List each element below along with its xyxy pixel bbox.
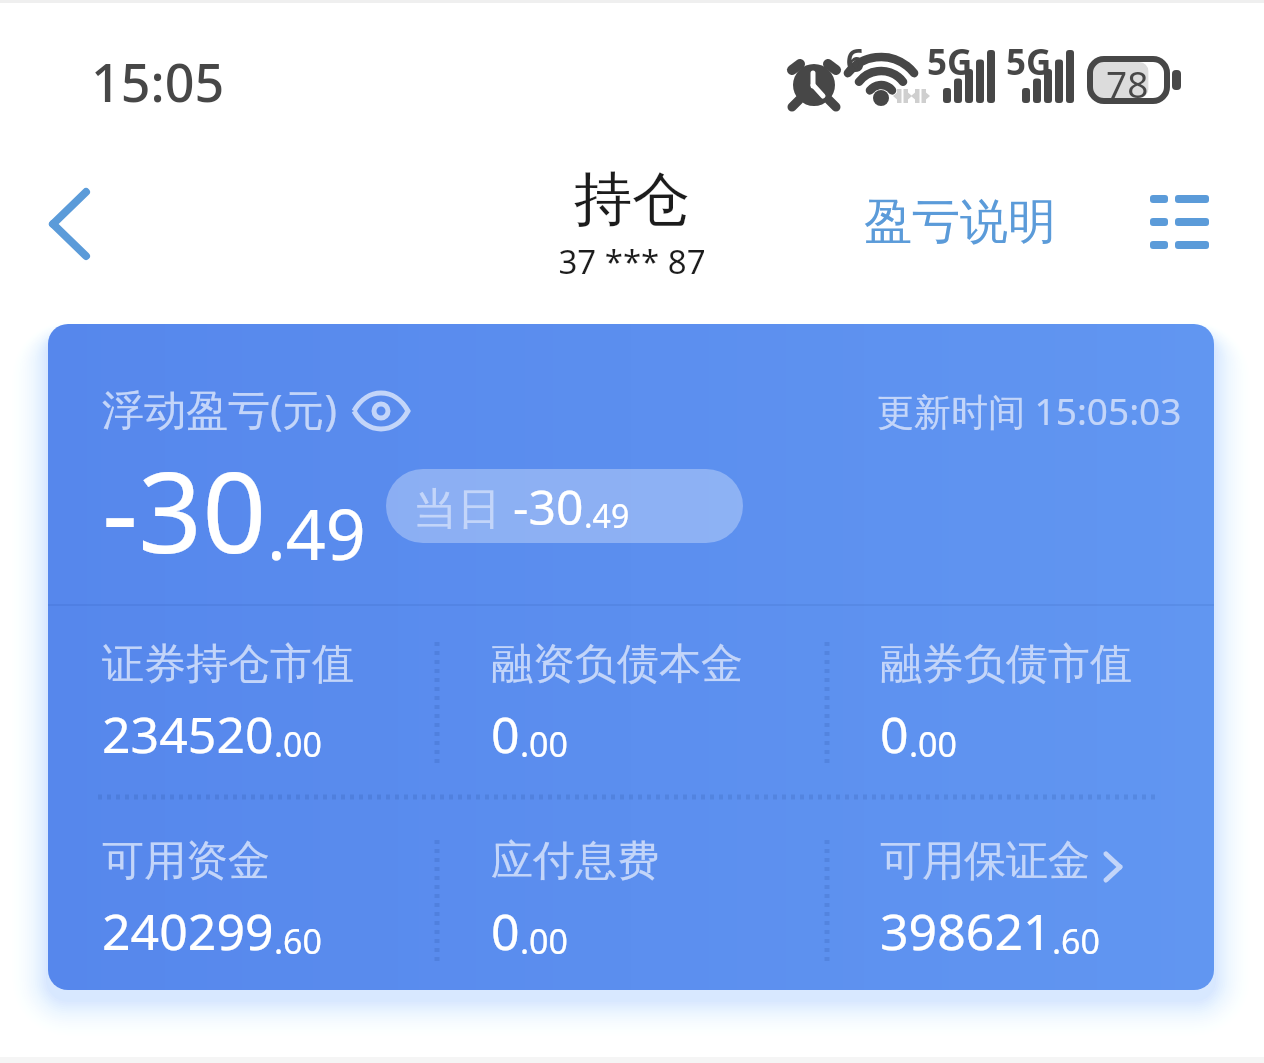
staticText: .00	[274, 721, 323, 767]
staticText: .49	[267, 485, 366, 580]
staticText: 78	[1106, 58, 1149, 108]
staticText: 6	[846, 38, 865, 82]
staticText: 0	[491, 700, 520, 768]
button[interactable]: 盈亏说明	[846, 180, 1074, 264]
staticText: 15:05	[91, 46, 225, 117]
staticText: .00	[520, 721, 569, 767]
staticText: 0	[880, 700, 909, 768]
staticText: 240299	[102, 897, 274, 965]
staticText: .60	[1052, 918, 1101, 964]
staticText: 融券负债市值	[880, 638, 1132, 691]
staticText: -30	[102, 433, 267, 586]
staticText: 37 *** 87	[558, 239, 706, 284]
staticText: 5G	[927, 38, 973, 86]
button[interactable]: 可用保证金	[826, 835, 1214, 965]
staticText: 融资负债本金	[491, 638, 743, 691]
staticText: -30	[513, 474, 584, 539]
staticText: 当日	[413, 477, 513, 537]
button[interactable]: Back	[20, 170, 120, 280]
staticText: 可用保证金	[880, 835, 1090, 888]
staticText: 盈亏说明	[864, 192, 1056, 252]
staticText: 0	[491, 897, 520, 965]
staticText: 持仓	[574, 163, 690, 236]
staticText: 234520	[102, 700, 274, 768]
button[interactable]: List view options	[1130, 175, 1230, 273]
staticText: 证券持仓市值	[102, 638, 354, 691]
staticText: 浮动盈亏(元)	[102, 380, 338, 437]
staticText: 更新时间 15:05:03	[877, 385, 1182, 436]
button[interactable]: Toggle amount visibility	[352, 386, 410, 432]
staticText: 398621	[880, 897, 1052, 965]
staticText: 可用资金	[102, 835, 270, 888]
button[interactable]: 当日	[386, 469, 743, 543]
staticText: 5G	[1006, 38, 1052, 86]
staticText: .60	[274, 918, 323, 964]
staticText: .00	[909, 721, 958, 767]
staticText: .49	[584, 494, 630, 538]
staticText: .00	[520, 918, 569, 964]
staticText: 应付息费	[491, 835, 659, 888]
